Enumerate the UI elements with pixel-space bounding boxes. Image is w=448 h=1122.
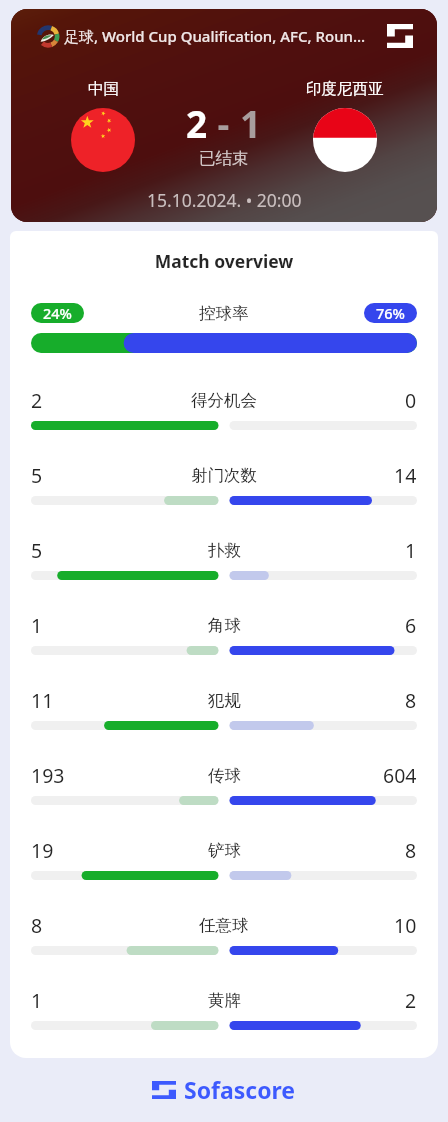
staticText: 任意球	[199, 915, 249, 936]
staticText: 2	[186, 98, 208, 148]
staticText: 犯规	[208, 690, 241, 711]
staticText: 射门次数	[191, 465, 257, 486]
other: Sofascore	[387, 24, 413, 48]
staticText: 1	[31, 987, 43, 1014]
staticText: 8	[405, 687, 417, 714]
staticText: 1	[240, 98, 262, 148]
staticText: 15.10.2024. • 20:00	[147, 188, 302, 212]
staticText: 76%	[376, 303, 405, 323]
button[interactable]: 24%	[10, 303, 438, 373]
staticText: 14	[394, 462, 417, 489]
button[interactable]: 193	[10, 748, 438, 823]
button[interactable]: 5	[10, 523, 438, 598]
staticText: 铲球	[208, 840, 241, 861]
button[interactable]: 8	[10, 898, 438, 973]
staticText: 足球, World Cup Qualification, AFC, Roun..…	[64, 26, 381, 46]
staticText: 8	[31, 912, 43, 939]
button[interactable]: 19	[10, 823, 438, 898]
staticText: 5	[31, 537, 43, 564]
staticText: 中国	[88, 79, 119, 99]
staticText: 6	[405, 612, 417, 639]
staticText: 传球	[208, 765, 241, 786]
staticText: 2	[405, 987, 417, 1014]
staticText: 2	[31, 387, 43, 414]
staticText: 黄牌	[208, 990, 241, 1011]
staticText: 控球率	[199, 303, 249, 323]
staticText: 1	[405, 537, 417, 564]
staticText: 1	[31, 612, 43, 639]
staticText: 8	[405, 837, 417, 864]
staticText: 得分机会	[191, 390, 257, 411]
staticText: -	[208, 98, 240, 148]
staticText: 24%	[43, 303, 72, 323]
button[interactable]: 足球, World Cup Qualification, AFC, Roun..…	[11, 9, 437, 222]
button[interactable]: 5	[10, 448, 438, 523]
staticText: 193	[31, 762, 65, 789]
staticText: 604	[383, 762, 417, 789]
staticText: 10	[394, 912, 417, 939]
staticText: 0	[405, 387, 417, 414]
button[interactable]: 1	[10, 598, 438, 673]
button[interactable]: 2	[10, 373, 438, 448]
staticText: 5	[31, 462, 43, 489]
staticText: 19	[31, 837, 54, 864]
staticText: 已结束	[199, 148, 249, 169]
button[interactable]: 1	[10, 973, 438, 1048]
staticText: 角球	[208, 615, 241, 636]
staticText: 扑救	[208, 540, 241, 561]
staticText: Sofascore	[184, 1074, 296, 1105]
button[interactable]: Sofascore	[0, 1074, 448, 1105]
staticText: 11	[31, 687, 54, 714]
staticText: Match overview	[10, 249, 438, 273]
button[interactable]: 11	[10, 673, 438, 748]
staticText: 印度尼西亚	[306, 79, 384, 99]
